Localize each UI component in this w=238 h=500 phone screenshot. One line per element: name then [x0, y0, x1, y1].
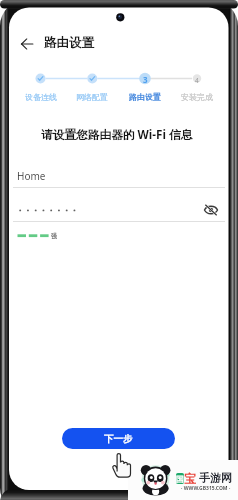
staticText: 路由设置	[44, 35, 94, 51]
staticText: 安装完成	[181, 92, 213, 102]
staticText: 国	[176, 474, 184, 484]
staticText: 强	[51, 232, 57, 240]
staticText: 4	[195, 76, 199, 85]
button[interactable]: Show password	[202, 201, 220, 219]
staticText: 设备连线	[25, 92, 57, 102]
staticText: 宝	[184, 471, 196, 484]
button[interactable]: 下一步	[62, 428, 175, 449]
button[interactable]: Back	[17, 34, 37, 54]
staticText: 手游网	[199, 471, 232, 484]
staticText: 网络配置	[76, 92, 108, 102]
staticText: 请设置您路由器的 Wi-Fi 信息	[41, 126, 193, 142]
staticText: Home	[17, 169, 46, 183]
staticText: · WWW.GB315.COM ·	[181, 485, 231, 492]
staticText: 路由设置	[129, 92, 161, 102]
staticText: 下一步	[104, 433, 133, 445]
staticText: 3	[143, 74, 148, 85]
